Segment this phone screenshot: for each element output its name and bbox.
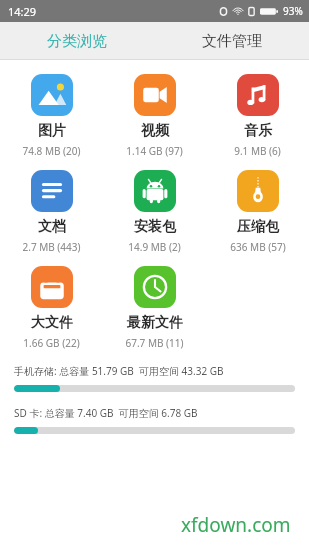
staticText: 67.7 MB (11): [125, 336, 184, 350]
staticText: xfdown.com: [181, 512, 291, 538]
button[interactable]: 图片: [0, 68, 103, 164]
staticText: 93%: [283, 4, 303, 18]
other: 图片: [31, 74, 73, 116]
staticText: 视频: [141, 122, 169, 140]
button[interactable]: 文档: [0, 164, 103, 260]
staticText: 文件管理: [202, 32, 262, 51]
staticText: 14.9 MB (2): [128, 240, 181, 254]
button[interactable]: 视频: [103, 68, 206, 164]
other: 最新文件: [134, 266, 176, 308]
button[interactable]: 最新文件: [103, 260, 206, 356]
staticText: 636 MB (57): [230, 240, 286, 254]
button[interactable]: 音乐: [206, 68, 309, 164]
button[interactable]: 安装包: [103, 164, 206, 260]
staticText: 大文件: [31, 314, 73, 332]
other: 大文件: [31, 266, 73, 308]
staticText: 图片: [38, 122, 66, 140]
staticText: 最新文件: [127, 314, 183, 332]
other: 音乐: [237, 74, 279, 116]
staticText: 手机存储: 总容量 51.79 GB 可用空间 43.32 GB: [14, 364, 224, 378]
staticText: SD 卡: 总容量 7.40 GB 可用空间 6.78 GB: [14, 406, 198, 420]
button[interactable]: 文件管理: [154, 22, 309, 60]
staticText: 音乐: [244, 122, 272, 140]
staticText: 1.66 GB (22): [23, 336, 80, 350]
staticText: 压缩包: [237, 218, 279, 236]
staticText: 分类浏览: [47, 32, 107, 51]
other: 文档: [31, 170, 73, 212]
staticText: 9.1 MB (6): [234, 144, 281, 158]
staticText: 安装包: [134, 218, 176, 236]
staticText: 14:29: [8, 4, 37, 19]
staticText: 文档: [38, 218, 66, 236]
other: 压缩包: [237, 170, 279, 212]
staticText: 1.14 GB (97): [126, 144, 183, 158]
other: 视频: [134, 74, 176, 116]
button[interactable]: 压缩包: [206, 164, 309, 260]
staticText: 74.8 MB (20): [22, 144, 81, 158]
other: 安装包: [134, 170, 176, 212]
button[interactable]: 大文件: [0, 260, 103, 356]
staticText: 2.7 MB (443): [22, 240, 81, 254]
button[interactable]: 分类浏览: [0, 22, 154, 60]
